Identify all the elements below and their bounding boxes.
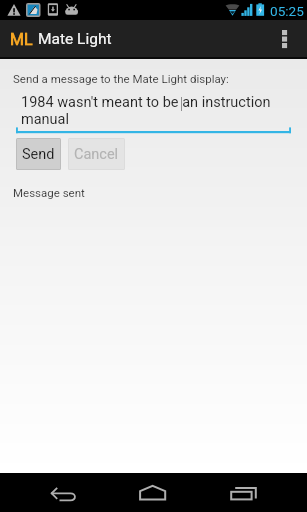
staticText: 05:25 — [270, 3, 304, 19]
staticText: Mate Light — [38, 30, 112, 48]
staticText: 1984 wasn't meant to be an instruction m… — [21, 94, 289, 127]
staticText: Message sent — [13, 186, 85, 199]
button[interactable]: Back — [28, 473, 100, 512]
button[interactable]: Send — [17, 139, 60, 169]
button[interactable]: More options — [272, 20, 297, 57]
staticText: Cancel — [74, 146, 119, 163]
staticText: Send a message to the Mate Light display… — [13, 72, 229, 85]
staticText: ML — [10, 30, 33, 49]
button[interactable]: Home — [117, 473, 189, 512]
button[interactable]: Cancel — [69, 139, 124, 169]
button[interactable]: Recent apps — [208, 473, 280, 512]
staticText: Send — [22, 146, 55, 163]
